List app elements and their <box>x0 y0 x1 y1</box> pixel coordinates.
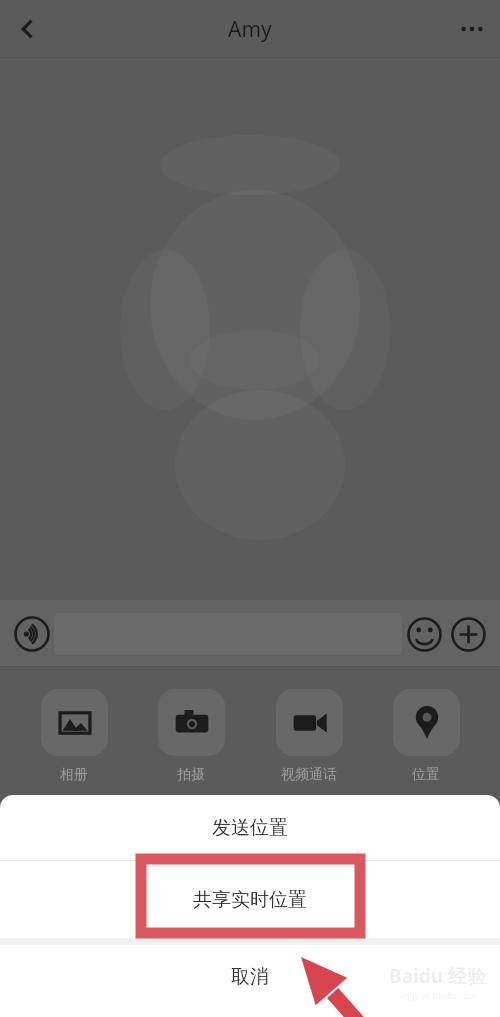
button[interactable]: 取消 <box>0 945 500 1017</box>
button[interactable]: Location <box>382 689 470 784</box>
button[interactable]: Camera <box>147 689 235 784</box>
staticText: 拍摄 <box>177 766 205 784</box>
button[interactable]: Video call <box>265 689 353 784</box>
button[interactable]: Voice input <box>10 612 54 656</box>
staticText: 相册 <box>60 766 88 784</box>
staticText: 共享实时位置 <box>193 888 307 912</box>
button[interactable]: More functions <box>446 612 490 656</box>
button[interactable]: Album <box>30 689 118 784</box>
button[interactable]: Emoji <box>402 612 446 656</box>
staticText: 视频通话 <box>281 766 337 784</box>
button[interactable]: Back <box>0 1 56 57</box>
button[interactable]: 共享实时位置 <box>0 861 500 938</box>
staticText: 发送位置 <box>212 816 288 840</box>
staticText: 取消 <box>231 965 269 989</box>
staticText: Amy <box>228 15 272 44</box>
button[interactable]: 发送位置 <box>0 795 500 860</box>
button[interactable]: More options <box>444 1 500 57</box>
staticText: 位置 <box>412 766 440 784</box>
staticText: Baidu 经验 <box>389 963 486 989</box>
